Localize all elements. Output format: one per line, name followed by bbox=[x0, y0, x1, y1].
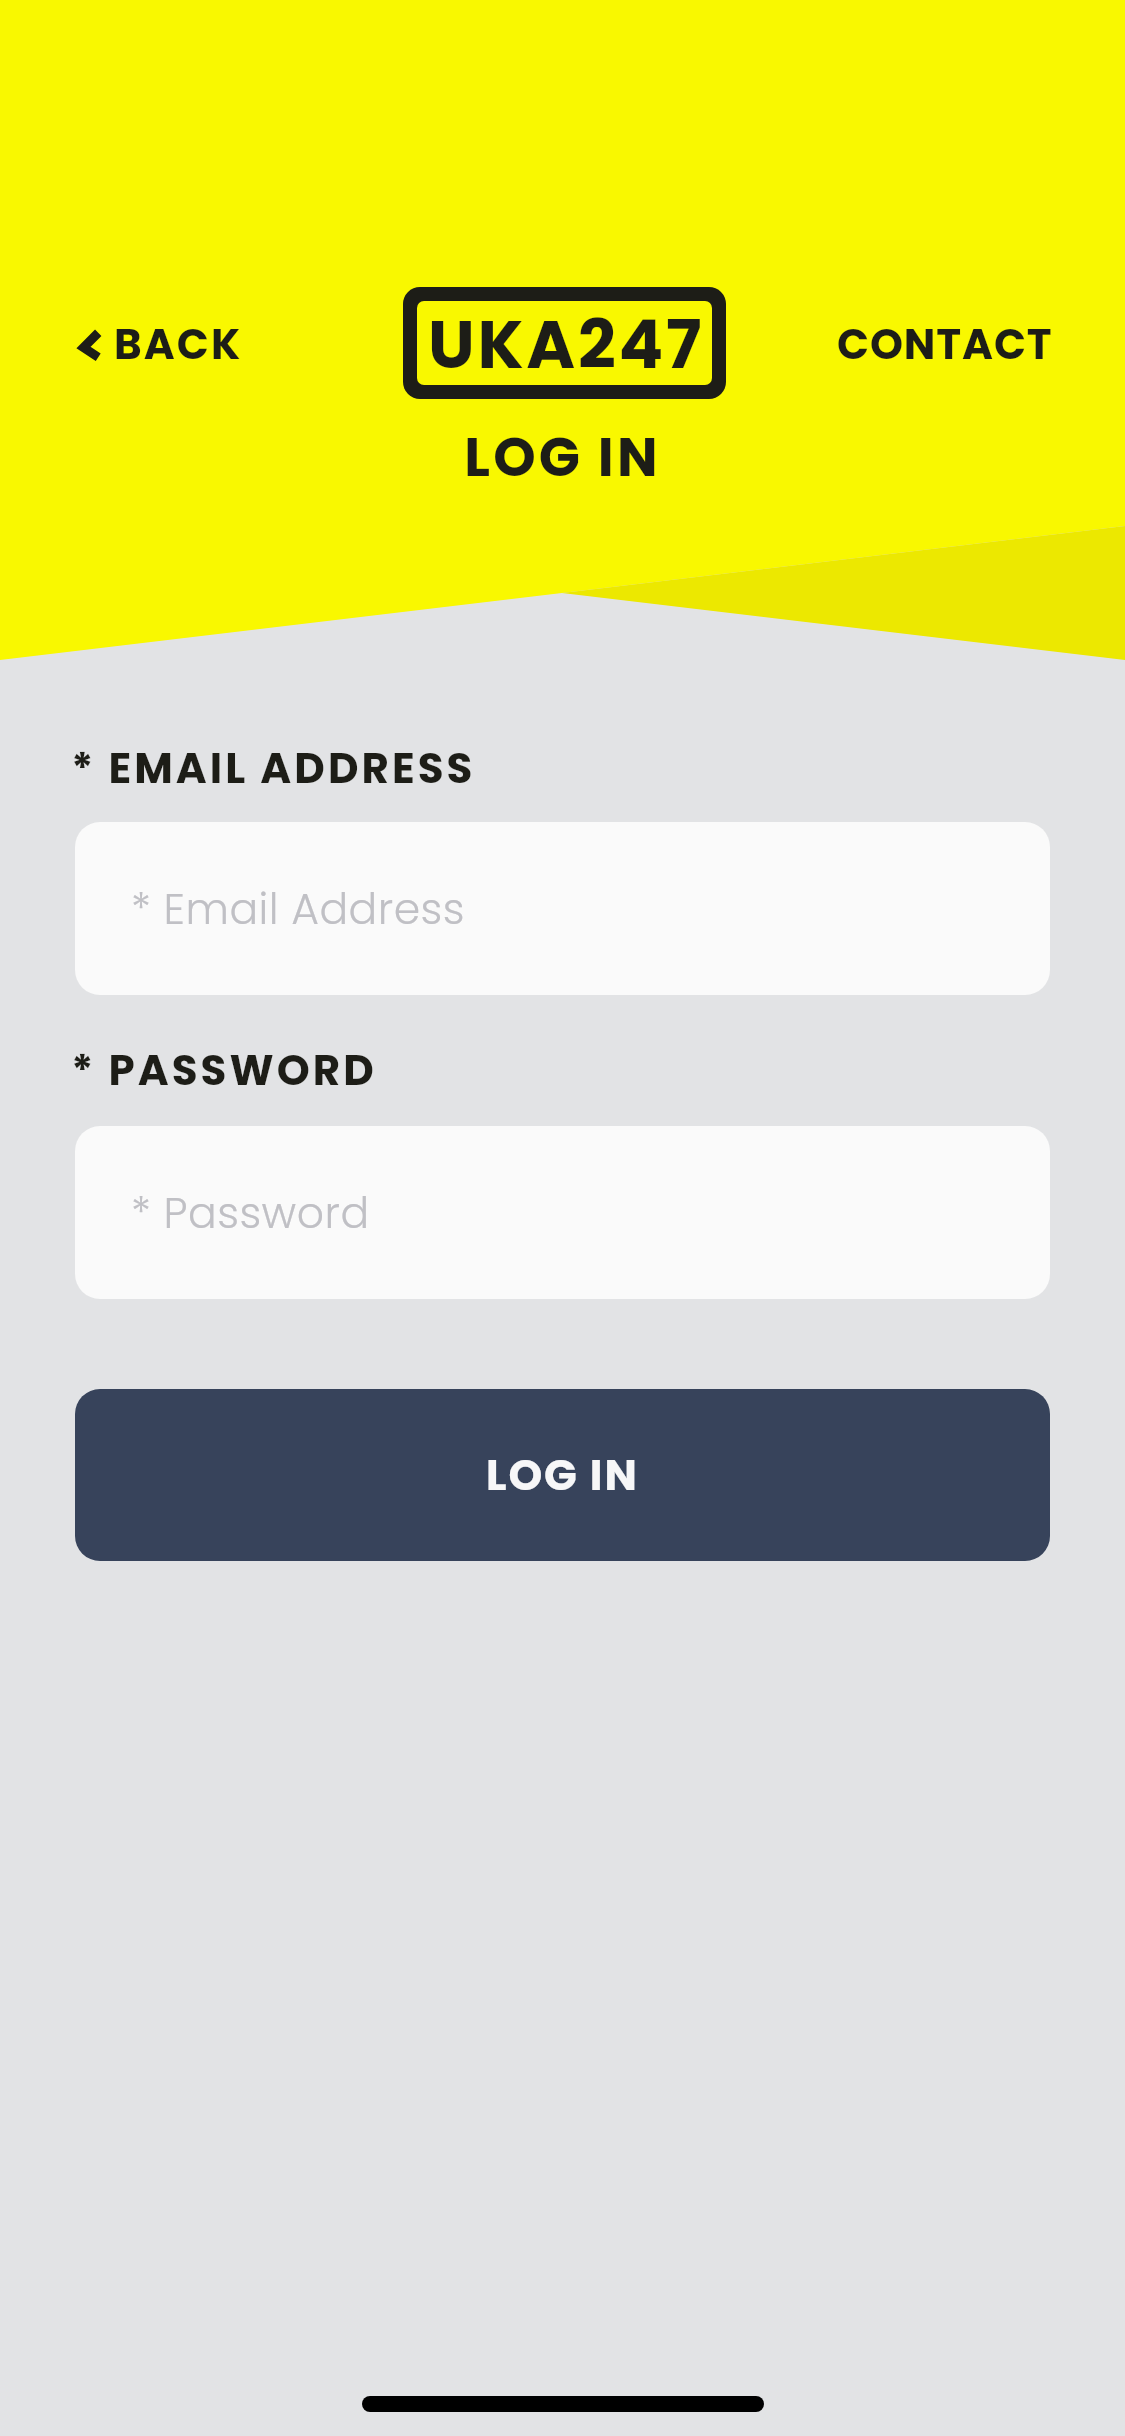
button[interactable]: UKA247 home bbox=[417, 301, 712, 385]
staticText: LOG IN bbox=[464, 419, 661, 495]
button[interactable]: * Password bbox=[75, 1126, 1050, 1299]
staticText: * EMAIL ADDRESS bbox=[71, 739, 476, 798]
staticText: CONTACT bbox=[837, 315, 1053, 374]
button[interactable]: * Email Address bbox=[75, 822, 1050, 995]
staticText: UKA247 bbox=[428, 301, 705, 382]
button[interactable]: CONTACT bbox=[819, 303, 1071, 386]
staticText: * Email Address bbox=[131, 879, 465, 938]
staticText: BACK bbox=[114, 315, 243, 374]
staticText: LOG IN bbox=[486, 1445, 639, 1505]
button[interactable]: BACK bbox=[61, 303, 261, 386]
staticText: * Password bbox=[131, 1183, 370, 1242]
button[interactable]: LOG IN bbox=[75, 1389, 1050, 1561]
staticText: * PASSWORD bbox=[71, 1041, 377, 1100]
